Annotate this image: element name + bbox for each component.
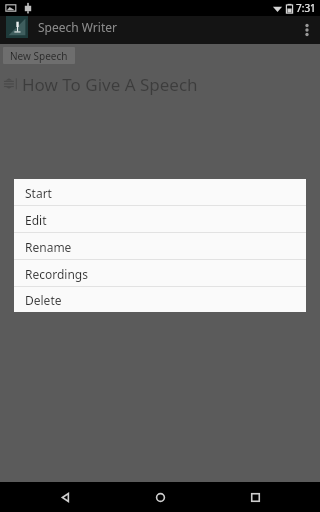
- staticText: Delete: [25, 292, 62, 308]
- staticText: Recordings: [25, 266, 88, 282]
- button[interactable]: How To Give A Speech: [0, 71, 320, 97]
- button[interactable]: Home: [130, 482, 190, 512]
- staticText: New Speech: [10, 49, 68, 63]
- button[interactable]: Recent apps: [225, 482, 285, 512]
- button[interactable]: Start: [14, 179, 306, 206]
- staticText: 7:31: [296, 1, 316, 15]
- button[interactable]: Rename: [14, 233, 306, 260]
- button[interactable]: More options: [294, 16, 320, 44]
- staticText: Edit: [25, 212, 47, 228]
- staticText: How To Give A Speech: [22, 73, 198, 96]
- staticText: Speech Writer: [38, 19, 117, 35]
- button[interactable]: Delete: [14, 287, 306, 312]
- button[interactable]: Recordings: [14, 260, 306, 287]
- staticText: Start: [25, 185, 52, 201]
- button[interactable]: Edit: [14, 206, 306, 233]
- button[interactable]: Back: [35, 482, 95, 512]
- button[interactable]: New Speech: [3, 47, 75, 64]
- staticText: Rename: [25, 239, 72, 255]
